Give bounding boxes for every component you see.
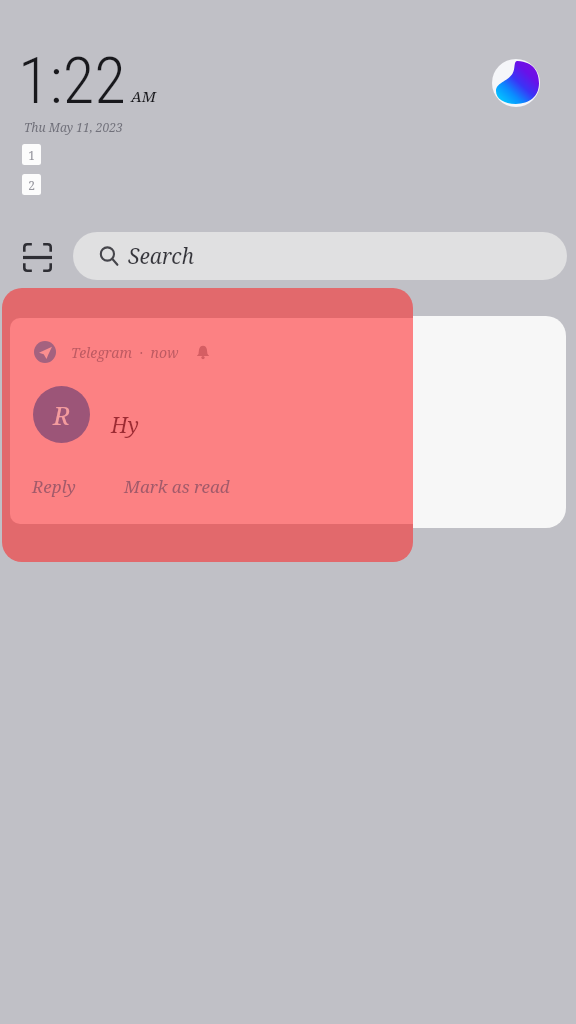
staticText: Telegram · now <box>71 343 179 362</box>
button[interactable]: Dismiss notification <box>2 288 413 562</box>
staticText: Hy <box>111 411 139 440</box>
staticText: 2 <box>28 177 35 193</box>
staticText: 1:22 <box>18 43 126 119</box>
staticText: Mark as read <box>124 475 230 498</box>
button[interactable]: Scan QR code <box>18 238 56 276</box>
button[interactable]: Assistant <box>492 59 540 107</box>
button[interactable]: 1 <box>22 144 41 165</box>
staticText: Reply <box>32 475 76 498</box>
button[interactable]: Reply <box>30 473 78 500</box>
staticText: R <box>53 397 71 432</box>
staticText: AM <box>131 86 156 106</box>
button[interactable]: 2 <box>22 174 41 195</box>
staticText: 1 <box>28 147 35 163</box>
button[interactable]: Telegram · now <box>10 318 413 524</box>
button[interactable]: Search <box>73 232 567 280</box>
staticText: Search <box>128 242 195 271</box>
button[interactable]: Mark as read <box>122 473 232 500</box>
staticText: Thu May 11, 2023 <box>24 119 123 135</box>
